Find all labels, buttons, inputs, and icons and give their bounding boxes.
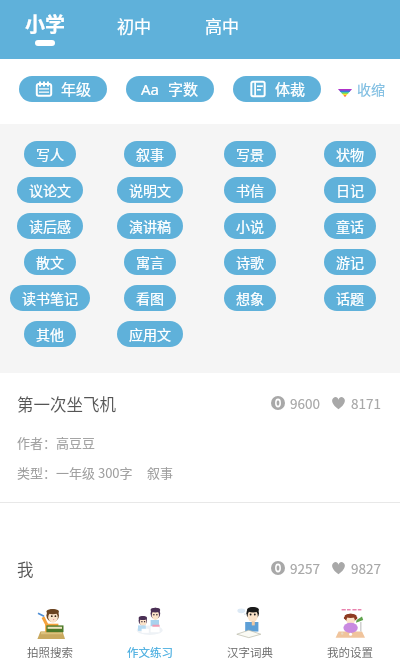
button[interactable]: 写景	[224, 141, 276, 167]
staticText: 书信	[236, 180, 264, 200]
button[interactable]: 第一次坐飞机	[0, 370, 400, 502]
button[interactable]: 话题	[324, 285, 376, 311]
staticText: 我	[17, 557, 34, 581]
staticText: 小学	[25, 9, 65, 38]
button[interactable]: 状物	[324, 141, 376, 167]
staticText: 读后感	[29, 216, 71, 236]
staticText: 演讲稿	[129, 216, 171, 236]
staticText: 作文练习	[127, 644, 173, 661]
button[interactable]: 看图	[124, 285, 176, 311]
button[interactable]: 寓言	[124, 249, 176, 275]
button[interactable]: 应用文	[117, 321, 183, 347]
button[interactable]: 高中	[189, 0, 255, 59]
staticText: 写景	[236, 144, 264, 164]
button[interactable]: 小学	[12, 0, 78, 59]
staticText: 初中	[117, 13, 151, 38]
staticText: 作者：高豆豆	[17, 433, 96, 452]
staticText: 童话	[336, 216, 364, 236]
staticText: 年级	[61, 78, 92, 100]
staticText: 寓言	[136, 252, 164, 272]
staticText: 8171	[351, 393, 381, 413]
staticText: Aa	[141, 79, 160, 99]
staticText: 游记	[336, 252, 364, 272]
button[interactable]: 汉字词典	[200, 594, 300, 666]
button[interactable]: 读后感	[17, 213, 83, 239]
button[interactable]: 小说	[224, 213, 276, 239]
button[interactable]: 叙事	[124, 141, 176, 167]
button[interactable]: 游记	[324, 249, 376, 275]
button[interactable]: 议论文	[17, 177, 83, 203]
button[interactable]: 书信	[224, 177, 276, 203]
button[interactable]: 拍照搜索	[0, 594, 100, 666]
staticText: 看图	[136, 288, 164, 308]
staticText: 类型：一年级 300字 叙事	[17, 463, 174, 482]
button[interactable]: 我的设置	[300, 594, 400, 666]
staticText: 9600	[290, 393, 320, 413]
staticText: 话题	[336, 288, 364, 308]
staticText: 9827	[351, 558, 381, 578]
staticText: 高中	[205, 13, 239, 38]
staticText: 我的设置	[327, 644, 373, 661]
staticText: 读书笔记	[22, 288, 78, 308]
button[interactable]: 散文	[24, 249, 76, 275]
button[interactable]: 想象	[224, 285, 276, 311]
button[interactable]: 说明文	[117, 177, 183, 203]
staticText: 小说	[236, 216, 264, 236]
button[interactable]: 读书笔记	[10, 285, 90, 311]
button[interactable]: 年级	[19, 76, 107, 102]
staticText: 第一次坐飞机	[17, 392, 116, 416]
staticText: 汉字词典	[227, 644, 273, 661]
button[interactable]: 诗歌	[224, 249, 276, 275]
staticText: 想象	[236, 288, 264, 308]
staticText: 其他	[36, 324, 64, 344]
button[interactable]: 其他	[24, 321, 76, 347]
button[interactable]: 初中	[101, 0, 167, 59]
staticText: 状物	[336, 144, 364, 164]
staticText: 应用文	[129, 324, 171, 344]
button[interactable]: 我	[0, 535, 400, 625]
staticText: 说明文	[129, 180, 171, 200]
button[interactable]: 写人	[24, 141, 76, 167]
staticText: 日记	[336, 180, 364, 200]
button[interactable]: Aa	[126, 76, 214, 102]
button[interactable]: 童话	[324, 213, 376, 239]
button[interactable]: 作文练习	[100, 594, 200, 666]
staticText: 收缩	[357, 79, 385, 99]
staticText: 诗歌	[236, 252, 264, 272]
staticText: 叙事	[136, 144, 164, 164]
button[interactable]: 收缩	[338, 79, 385, 99]
staticText: 散文	[36, 252, 64, 272]
button[interactable]: 演讲稿	[117, 213, 183, 239]
staticText: 9257	[290, 558, 320, 578]
button[interactable]: 体裁	[233, 76, 321, 102]
staticText: 拍照搜索	[27, 644, 73, 661]
button[interactable]: 日记	[324, 177, 376, 203]
staticText: 写人	[36, 144, 64, 164]
staticText: 体裁	[275, 78, 306, 100]
staticText: 字数	[168, 78, 199, 100]
staticText: 议论文	[29, 180, 71, 200]
